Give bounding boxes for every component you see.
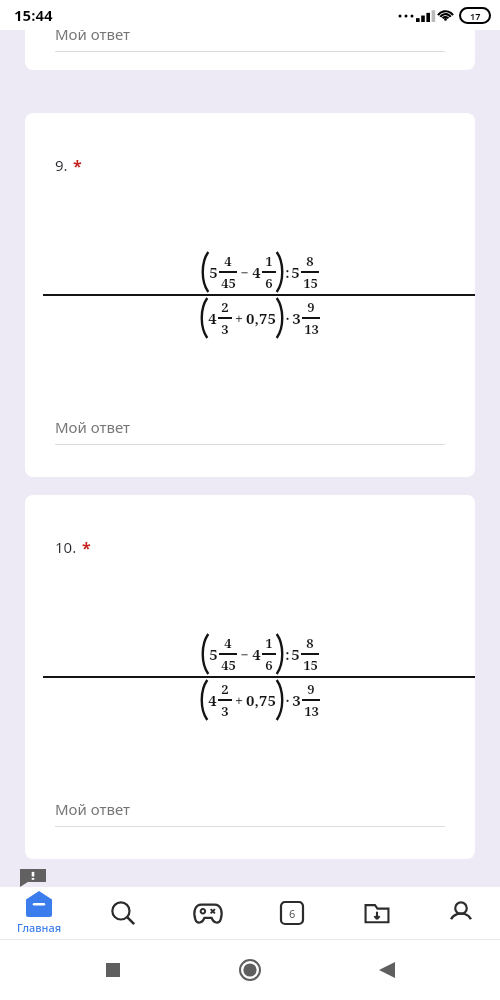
staticText: 9. — [55, 155, 68, 175]
staticText: 3 — [221, 702, 229, 720]
button[interactable]: ОТПРАВИТЬ — [28, 896, 188, 914]
staticText: 2 — [221, 680, 229, 698]
staticText: * — [82, 537, 91, 559]
staticText: Мой ответ — [55, 417, 131, 437]
staticText: 2 — [221, 298, 229, 316]
staticText: 45 — [221, 656, 236, 674]
staticText: : — [285, 263, 290, 282]
staticText: Мой ответ — [55, 30, 131, 44]
button[interactable]: Мой ответ — [55, 417, 445, 445]
staticText: + — [235, 691, 243, 710]
staticText: 1 — [265, 634, 273, 652]
staticText: 3 — [292, 690, 301, 710]
staticText: 45 — [221, 274, 236, 292]
staticText: 5 — [291, 262, 300, 282]
staticText: ОТПРАВИТЬ — [67, 910, 150, 914]
button[interactable]: Главная — [4, 887, 74, 939]
button[interactable]: Профиль — [426, 897, 496, 929]
staticText: 0,75 — [246, 690, 276, 710]
staticText: 15 — [303, 656, 318, 674]
staticText: 3 — [292, 308, 301, 328]
staticText: 1 — [265, 252, 273, 270]
staticText: · — [285, 309, 290, 328]
staticText: 3 — [221, 320, 229, 338]
staticText: 4 — [252, 644, 261, 664]
button[interactable]: Игры — [173, 898, 243, 928]
button[interactable]: Домой — [226, 946, 274, 994]
staticText: 13 — [304, 702, 319, 720]
button[interactable]: Загрузки — [342, 898, 412, 928]
button[interactable]: Назад — [363, 946, 411, 994]
staticText: 15:44 — [14, 5, 53, 25]
staticText: 4 — [208, 690, 217, 710]
staticText: Главная — [17, 920, 62, 935]
staticText: 6 — [265, 274, 273, 292]
button[interactable]: Вкладки — [257, 898, 327, 928]
staticText: * — [73, 155, 82, 177]
staticText: : — [285, 645, 290, 664]
staticText: 9 — [307, 680, 315, 698]
staticText: 6 — [289, 906, 296, 921]
staticText: − — [240, 263, 249, 282]
staticText: + — [235, 309, 243, 328]
staticText: 4 — [224, 252, 232, 270]
button[interactable]: Поиск — [88, 896, 158, 930]
staticText: · — [285, 691, 290, 710]
staticText: 5 — [209, 644, 218, 664]
staticText: Мой ответ — [55, 799, 131, 819]
staticText: 0,75 — [246, 308, 276, 328]
button[interactable]: Недавние — [89, 946, 137, 994]
staticText: 17 — [470, 10, 481, 22]
button[interactable]: Мой ответ — [55, 799, 445, 827]
staticText: − — [240, 645, 249, 664]
staticText: 6 — [265, 656, 273, 674]
staticText: 4 — [224, 634, 232, 652]
staticText: 4 — [252, 262, 261, 282]
staticText: 5 — [209, 262, 218, 282]
staticText: 8 — [306, 634, 314, 652]
staticText: 9 — [307, 298, 315, 316]
staticText: 10. — [55, 537, 77, 557]
staticText: 5 — [291, 644, 300, 664]
staticText: 13 — [304, 320, 319, 338]
staticText: 15 — [303, 274, 318, 292]
staticText: 4 — [208, 308, 217, 328]
staticText: 8 — [306, 252, 314, 270]
